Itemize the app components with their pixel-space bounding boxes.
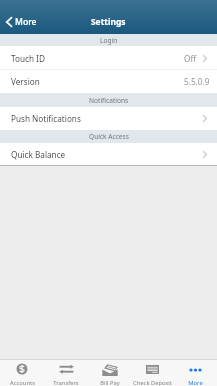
staticText: Version [11,76,40,87]
staticText: Transfers [53,379,79,386]
button[interactable]: Check Deposit [131,359,174,386]
button[interactable]: Quick Balance [0,143,217,166]
staticText: Touch ID [11,53,45,64]
button[interactable]: Version [0,70,217,93]
staticText: 5.5.0.9 [184,76,210,87]
button[interactable]: Push Notifications [0,107,217,130]
staticText: Accounts [10,379,35,386]
button[interactable]: More [174,359,217,386]
staticText: Settings [91,16,126,27]
staticText: Quick Balance [11,149,66,160]
staticText: Quick Access [89,132,129,141]
other: Back [6,17,12,27]
button[interactable]: Bill Pay [88,359,131,386]
staticText: Login [100,36,118,45]
staticText: Notifications [89,96,129,105]
button[interactable]: Transfers [44,359,88,386]
button[interactable]: Touch ID [0,46,217,70]
staticText: Off [184,53,197,64]
button[interactable]: Back [0,16,41,27]
staticText: Check Deposit [133,379,172,386]
staticText: More [188,379,203,386]
button[interactable]: Accounts [0,359,44,386]
staticText: More [15,16,37,27]
staticText: Bill Pay [100,379,120,386]
staticText: Push Notifications [11,113,81,124]
